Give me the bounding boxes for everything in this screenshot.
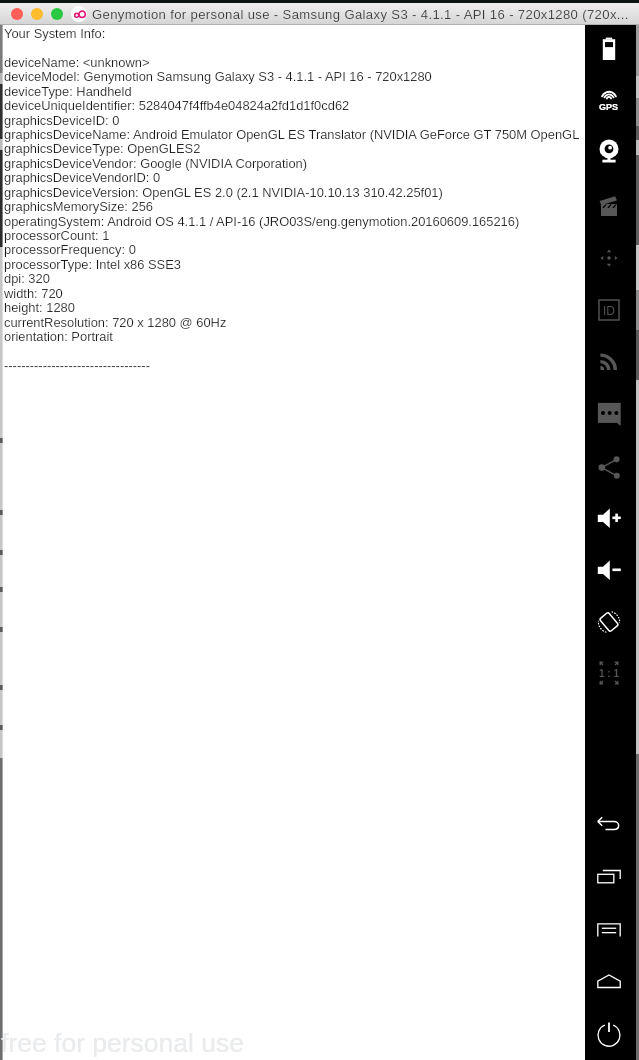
staticText: graphicsDeviceVersion: OpenGL ES 2.0 (2.… (4, 185, 589, 199)
staticText: graphicsDeviceVendorID: 0 (4, 170, 589, 184)
staticText: graphicsDeviceType: OpenGLES2 (4, 141, 589, 155)
staticText: 1 : 1 (599, 668, 620, 679)
staticText: graphicsDeviceName: Android Emulator Ope… (4, 127, 589, 141)
staticText: ID (603, 304, 615, 317)
staticText: deviceModel: Genymotion Samsung Galaxy S… (4, 69, 589, 83)
button[interactable]: Battery (587, 28, 631, 72)
staticText: GPS (599, 102, 619, 112)
button[interactable]: Volume up (587, 496, 631, 540)
button[interactable]: Recent apps (587, 855, 631, 899)
staticText: orientation: Portrait (4, 329, 589, 343)
staticText: height: 1280 (4, 300, 589, 314)
staticText: deviceType: Handheld (4, 84, 589, 98)
button[interactable]: Back (587, 803, 631, 847)
button[interactable]: Scale one to one (587, 651, 631, 695)
button[interactable]: Multitouch (587, 236, 631, 280)
button[interactable]: Close window (11, 8, 23, 20)
button[interactable]: Network baseband (587, 339, 631, 383)
staticText: Your System Info: (4, 26, 589, 40)
staticText: Genymotion for personal use - Samsung Ga… (92, 7, 629, 22)
button[interactable]: Rotate screen (587, 600, 631, 644)
button[interactable]: Minimize window (31, 8, 43, 20)
staticText: deviceUniqueIdentifier: 5284047f4ffb4e04… (4, 98, 589, 112)
staticText: operatingSystem: Android OS 4.1.1 / API-… (4, 214, 589, 228)
button[interactable]: Messages (587, 391, 631, 435)
staticText: ---------------------------------- (4, 358, 589, 372)
button[interactable]: Volume down (587, 548, 631, 592)
staticText: processorFrequency: 0 (4, 242, 589, 256)
button[interactable]: Power (587, 1012, 631, 1056)
staticText: dpi: 320 (4, 271, 589, 285)
button[interactable]: GPS (587, 78, 631, 122)
staticText: currentResolution: 720 x 1280 @ 60Hz (4, 315, 589, 329)
button[interactable]: Maximize window (51, 8, 63, 20)
button[interactable]: Identifiers (587, 288, 631, 332)
staticText: graphicsMemorySize: 256 (4, 199, 589, 213)
button[interactable]: Share (587, 444, 631, 488)
staticText: deviceName: <unknown> (4, 55, 589, 69)
button[interactable]: Camera (587, 130, 631, 174)
staticText: width: 720 (4, 286, 589, 300)
staticText: free for personal use (1, 1028, 245, 1058)
button[interactable]: Menu (587, 907, 631, 951)
button[interactable]: Home (587, 959, 631, 1003)
button[interactable]: Screen recording (587, 183, 631, 227)
staticText: processorType: Intel x86 SSE3 (4, 257, 589, 271)
staticText: graphicsDeviceVendor: Google (NVIDIA Cor… (4, 156, 589, 170)
staticText: processorCount: 1 (4, 228, 589, 242)
staticText: graphicsDeviceID: 0 (4, 113, 589, 127)
